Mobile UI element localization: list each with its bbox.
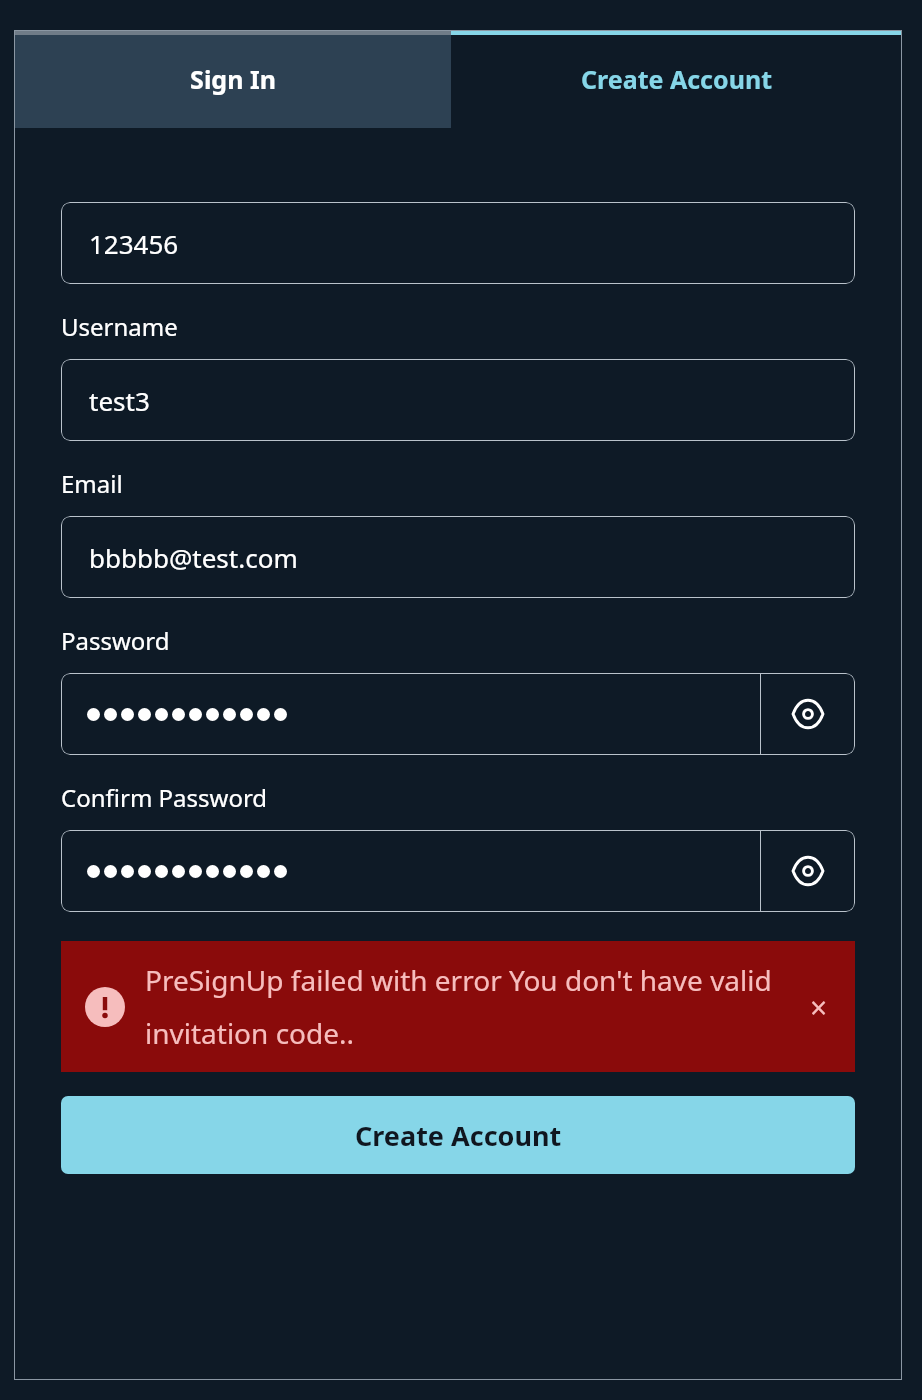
button[interactable]: Show password xyxy=(761,673,855,755)
button[interactable] xyxy=(61,673,760,755)
staticText: 123456 xyxy=(89,226,179,261)
staticText: Username xyxy=(61,310,178,343)
staticText: test3 xyxy=(89,383,150,418)
button[interactable]: Create Account xyxy=(61,1096,855,1174)
button[interactable]: Dismiss error xyxy=(783,977,855,1037)
button[interactable]: bbbbb@test.com xyxy=(61,516,855,598)
staticText: PreSignUp failed with error You don't ha… xyxy=(145,961,783,1052)
button[interactable] xyxy=(61,830,760,912)
button[interactable]: Sign In xyxy=(14,30,451,128)
staticText: Sign In xyxy=(190,62,276,96)
button[interactable]: Show password xyxy=(761,830,855,912)
staticText: Password xyxy=(61,624,170,657)
staticText: × xyxy=(810,987,828,1028)
staticText: Create Account xyxy=(581,62,772,96)
staticText: Confirm Password xyxy=(61,781,268,814)
button[interactable]: test3 xyxy=(61,359,855,441)
staticText: Email xyxy=(61,467,123,500)
button[interactable]: 123456 xyxy=(61,202,855,284)
staticText: bbbbb@test.com xyxy=(89,540,298,575)
staticText: Create Account xyxy=(355,1117,562,1154)
button[interactable]: Create Account xyxy=(451,30,902,128)
